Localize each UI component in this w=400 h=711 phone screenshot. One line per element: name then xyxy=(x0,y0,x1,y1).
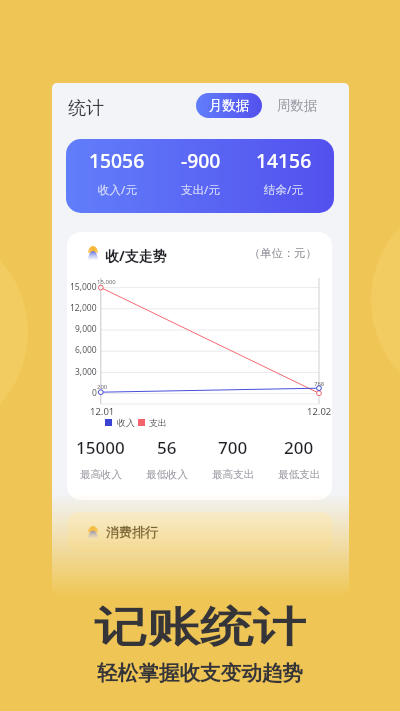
staticText: 最低支出 xyxy=(278,468,320,481)
button[interactable]: 消费排行 xyxy=(68,512,332,552)
staticText: 收入/元 xyxy=(98,182,137,198)
staticText: 12.01 xyxy=(90,405,115,418)
staticText: 周数据 xyxy=(277,97,318,114)
staticText: 56 xyxy=(157,436,177,459)
staticText: 收入 xyxy=(117,417,135,428)
staticText: 9,000 xyxy=(75,323,97,335)
staticText: 0 xyxy=(92,387,97,399)
staticText: 200 xyxy=(284,436,314,459)
staticText: 6,000 xyxy=(75,344,97,356)
staticText: 收/支走势 xyxy=(105,246,167,265)
staticText: 12.02 xyxy=(307,405,332,418)
staticText: 结余/元 xyxy=(264,182,303,198)
staticText: 统计 xyxy=(68,97,104,120)
staticText: 15,000 xyxy=(97,278,116,286)
staticText: 月数据 xyxy=(209,97,250,114)
button[interactable]: 月数据 xyxy=(196,93,262,118)
staticText: 768 xyxy=(314,380,325,388)
staticText: （单位：元） xyxy=(249,246,317,260)
staticText: 支出 xyxy=(149,417,167,428)
staticText: 消费排行 xyxy=(106,524,158,540)
staticText: 15056 xyxy=(89,147,145,173)
staticText: 14156 xyxy=(256,147,312,173)
staticText: 15,000 xyxy=(70,281,97,293)
staticText: 12,000 xyxy=(70,302,97,314)
staticText: 3,000 xyxy=(75,366,97,378)
button[interactable]: 周数据 xyxy=(274,93,320,118)
staticText: -900 xyxy=(181,147,221,173)
staticText: 记账统计 xyxy=(94,601,306,654)
staticText: 支出/元 xyxy=(181,182,220,198)
staticText: 最高支出 xyxy=(212,468,254,481)
staticText: 轻松掌握收支变动趋势 xyxy=(97,660,303,686)
staticText: 15000 xyxy=(76,436,125,459)
staticText: 200 xyxy=(97,383,108,391)
staticText: 最高收入 xyxy=(80,468,122,481)
staticText: 最低收入 xyxy=(146,468,188,481)
staticText: 700 xyxy=(218,436,248,459)
